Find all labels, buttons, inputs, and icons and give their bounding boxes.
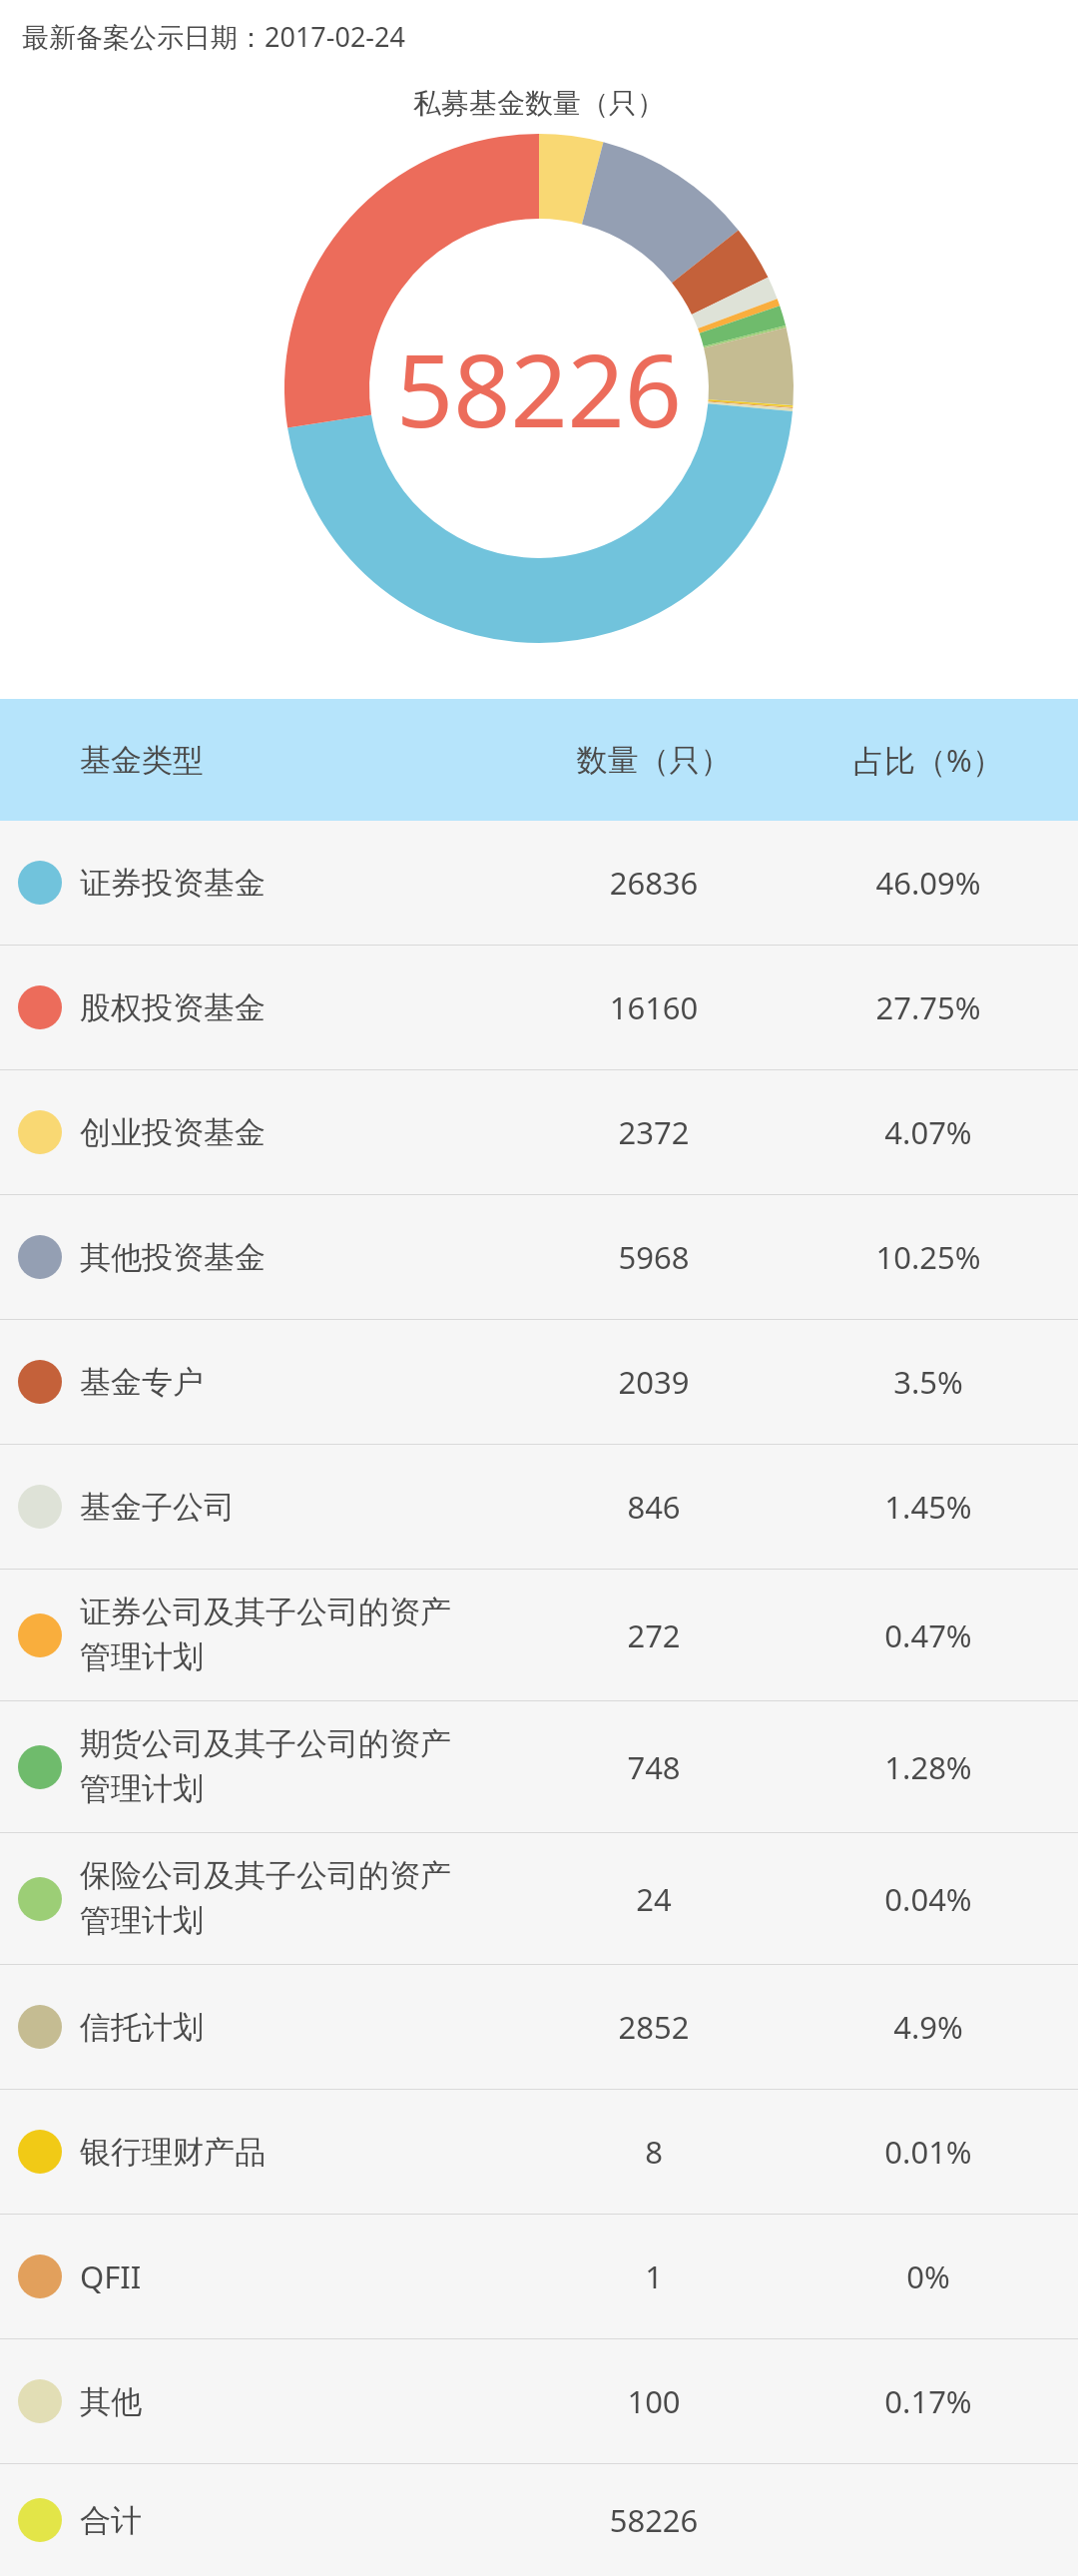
staticText: QFII [80, 2255, 529, 2297]
staticText: 0.17% [779, 2380, 1078, 2422]
staticText: 银行理财产品 [80, 2133, 529, 2172]
staticText: 基金专户 [80, 1363, 529, 1402]
staticText: 26836 [529, 862, 779, 904]
staticText: 基金子公司 [80, 1488, 529, 1527]
staticText: 0.47% [779, 1614, 1078, 1656]
staticText: 0% [779, 2255, 1078, 2297]
button[interactable]: 证券公司及其子公司的资产 管理计划 [0, 1570, 1078, 1700]
staticText: 1.28% [779, 1746, 1078, 1788]
staticText: 8 [529, 2131, 779, 2173]
button[interactable]: 创业投资基金 [0, 1070, 1078, 1194]
staticText: 4.07% [779, 1111, 1078, 1153]
button[interactable]: 股权投资基金 [0, 946, 1078, 1069]
staticText: 24 [529, 1878, 779, 1920]
staticText: 数量（只） [529, 741, 779, 780]
staticText: 信托计划 [80, 2008, 529, 2047]
staticText: 4.9% [779, 2006, 1078, 2048]
staticText: 846 [529, 1486, 779, 1528]
staticText: 16160 [529, 986, 779, 1028]
button[interactable]: 银行理财产品 [0, 2090, 1078, 2214]
staticText: 2039 [529, 1361, 779, 1403]
staticText: 证券投资基金 [80, 864, 529, 903]
staticText: 272 [529, 1614, 779, 1656]
button[interactable]: 基金专户 [0, 1320, 1078, 1444]
staticText: 占比（%） [779, 739, 1078, 781]
staticText: 股权投资基金 [80, 988, 529, 1027]
staticText: 748 [529, 1746, 779, 1788]
button[interactable]: 其他 [0, 2339, 1078, 2463]
button[interactable]: 基金子公司 [0, 1445, 1078, 1569]
staticText: 私募基金数量（只） [413, 86, 665, 121]
button[interactable]: 证券投资基金 [0, 821, 1078, 945]
staticText: 其他 [80, 2382, 529, 2421]
staticText: 0.04% [779, 1878, 1078, 1920]
staticText: 58226 [529, 2499, 779, 2541]
staticText: 期货公司及其子公司的资产 管理计划 [80, 1724, 529, 1809]
button[interactable]: 保险公司及其子公司的资产 管理计划 [0, 1833, 1078, 1964]
staticText: 46.09% [779, 862, 1078, 904]
staticText: 0.01% [779, 2131, 1078, 2173]
staticText: 基金类型 [80, 741, 529, 780]
staticText: 5968 [529, 1236, 779, 1278]
staticText: 1.45% [779, 1486, 1078, 1528]
staticText: 合计 [80, 2501, 529, 2540]
staticText: 2372 [529, 1111, 779, 1153]
button[interactable]: 信托计划 [0, 1965, 1078, 2089]
staticText: 创业投资基金 [80, 1113, 529, 1152]
staticText: 最新备案公示日期：2017-02-24 [22, 18, 405, 55]
staticText: 2852 [529, 2006, 779, 2048]
staticText: 1 [529, 2255, 779, 2297]
staticText: 100 [529, 2380, 779, 2422]
staticText: 58226 [396, 321, 682, 456]
staticText: 3.5% [779, 1361, 1078, 1403]
staticText: 证券公司及其子公司的资产 管理计划 [80, 1593, 529, 1677]
button[interactable]: 期货公司及其子公司的资产 管理计划 [0, 1701, 1078, 1832]
staticText: 10.25% [779, 1236, 1078, 1278]
button[interactable]: 合计 [0, 2464, 1078, 2576]
staticText: 保险公司及其子公司的资产 管理计划 [80, 1856, 529, 1941]
button[interactable]: QFII [0, 2215, 1078, 2338]
staticText: 其他投资基金 [80, 1238, 529, 1277]
button[interactable]: 其他投资基金 [0, 1195, 1078, 1319]
staticText: 27.75% [779, 986, 1078, 1028]
